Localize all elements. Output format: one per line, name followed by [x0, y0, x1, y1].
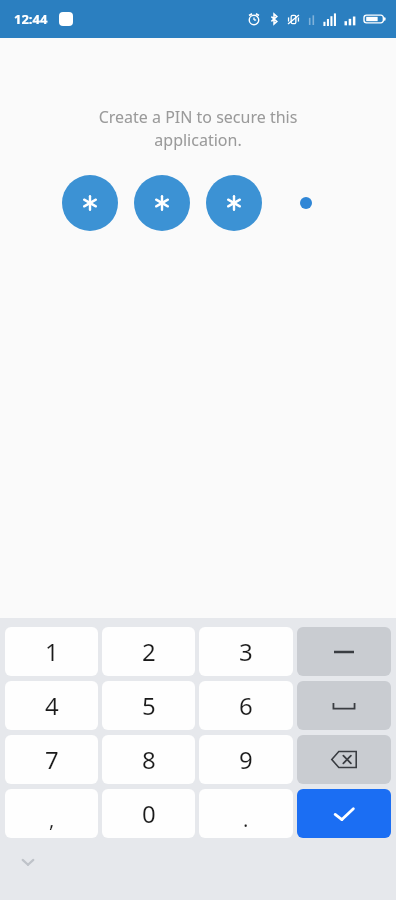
staticText: 5: [142, 689, 156, 722]
button[interactable]: 5: [102, 681, 195, 730]
staticText: 9: [239, 743, 253, 776]
button[interactable]: 8: [102, 735, 195, 784]
staticText: 6: [239, 689, 253, 722]
staticText: 1: [45, 635, 59, 668]
staticText: 12:44: [14, 10, 48, 28]
button[interactable]: .: [199, 789, 293, 838]
staticText: 4: [45, 689, 59, 722]
staticText: 3: [239, 635, 253, 668]
staticText: .: [243, 806, 249, 833]
button[interactable]: Backspace: [297, 735, 391, 784]
button[interactable]: Minus: [297, 627, 391, 676]
button[interactable]: 6: [199, 681, 293, 730]
button[interactable]: Hide keyboard: [17, 851, 39, 873]
staticText: 2: [142, 635, 156, 668]
button[interactable]: 1: [5, 627, 98, 676]
button[interactable]: ,: [5, 789, 98, 838]
staticText: 7: [45, 743, 59, 776]
button[interactable]: Space: [297, 681, 391, 730]
button[interactable]: 4: [5, 681, 98, 730]
staticText: 8: [142, 743, 156, 776]
button[interactable]: 2: [102, 627, 195, 676]
button[interactable]: 3: [199, 627, 293, 676]
staticText: ,: [49, 806, 55, 833]
button[interactable]: 7: [5, 735, 98, 784]
button[interactable]: 0: [102, 789, 195, 838]
button[interactable]: 9: [199, 735, 293, 784]
staticText: Create a PIN to secure this application.: [24, 106, 372, 151]
staticText: 0: [142, 797, 156, 830]
button[interactable]: Confirm: [297, 789, 391, 838]
